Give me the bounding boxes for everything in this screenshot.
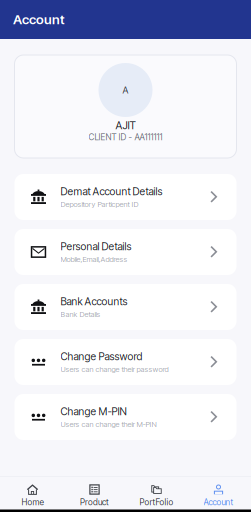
staticText: Change Password [60, 350, 142, 363]
staticText: A [122, 84, 128, 96]
staticText: Account [203, 497, 233, 507]
button[interactable]: PortFolio [125, 477, 187, 509]
button[interactable]: Account [187, 477, 249, 509]
staticText: Users can change their M-PIN [60, 420, 156, 429]
button[interactable]: Change M-PIN [14, 394, 236, 440]
staticText: Bank Details [60, 310, 100, 319]
staticText: Depository Particpent ID [60, 200, 138, 209]
staticText: Users can change their password [60, 365, 168, 374]
staticText: Home [21, 497, 43, 507]
staticText: Product [80, 497, 109, 507]
staticText: Personal Details [60, 240, 131, 253]
staticText: AJIT [115, 119, 135, 132]
button[interactable]: Home [1, 477, 63, 509]
staticText: Mobile,Email,Address [60, 255, 127, 264]
staticText: Bank Accounts [60, 295, 127, 308]
button[interactable]: Personal Details [14, 229, 236, 275]
staticText: PortFolio [139, 497, 173, 507]
button[interactable]: Change Password [14, 339, 236, 385]
button[interactable]: Demat Account Details [14, 174, 236, 220]
button[interactable]: Bank Accounts [14, 284, 236, 330]
button[interactable]: Product [63, 477, 125, 509]
staticText: Account [13, 11, 65, 27]
staticText: CLIENT ID - AA111111 [88, 132, 162, 142]
staticText: Demat Account Details [60, 185, 162, 198]
staticText: Change M-PIN [60, 405, 126, 418]
